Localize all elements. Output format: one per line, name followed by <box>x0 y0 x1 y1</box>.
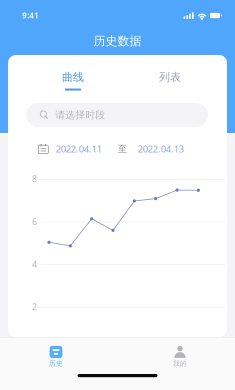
staticText: 历史 <box>49 359 63 368</box>
staticText: 我的 <box>173 359 187 368</box>
staticText: 8 <box>32 173 37 185</box>
button[interactable]: 请选择时段 <box>26 103 208 127</box>
staticText: 2022.04.11 <box>56 143 102 155</box>
staticText: 至 <box>118 143 127 155</box>
staticText: 请选择时段 <box>55 109 105 121</box>
staticText: 历史数据 <box>93 33 141 48</box>
staticText: 2022.04.13 <box>138 143 184 155</box>
staticText: 6 <box>32 216 37 227</box>
button[interactable]: 曲线 <box>28 69 118 93</box>
staticText: 2 <box>32 301 37 313</box>
button[interactable]: 列表 <box>125 69 215 93</box>
staticText: 9:41 <box>22 10 39 21</box>
staticText: 4 <box>32 258 37 270</box>
button[interactable]: 历史 <box>16 345 96 368</box>
staticText: 曲线 <box>62 70 84 84</box>
button[interactable]: 我的 <box>140 345 220 368</box>
staticText: 列表 <box>159 70 181 84</box>
